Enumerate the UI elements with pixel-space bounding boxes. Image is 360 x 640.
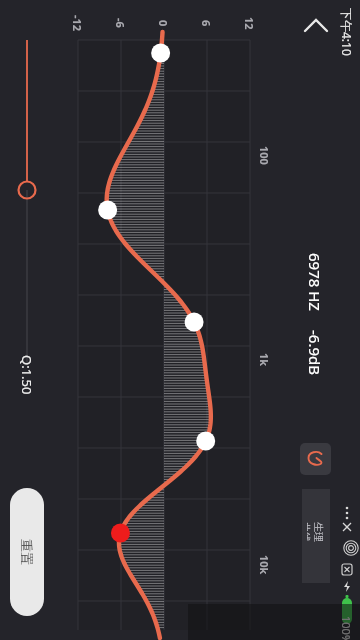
button[interactable]: Hearing profile	[300, 443, 331, 475]
staticText: 12	[242, 17, 257, 30]
button[interactable]: 生理曲线测试	[302, 489, 330, 583]
staticText: 1k	[257, 353, 272, 367]
staticText: Q:1.50	[18, 355, 36, 395]
staticText: 生理曲线测试	[307, 522, 325, 550]
staticText: 下午4:10	[339, 8, 355, 56]
button[interactable]: Collapse	[298, 8, 334, 42]
staticText: 10k	[257, 555, 272, 575]
staticText: 重置	[19, 539, 35, 565]
staticText: -6	[113, 18, 128, 28]
staticText: 100	[257, 146, 272, 165]
button[interactable]: 重置	[10, 488, 44, 616]
staticText: -6.9dB	[305, 330, 325, 375]
staticText: 0	[156, 20, 171, 27]
staticText: 6	[199, 20, 214, 27]
staticText: 6978 HZ	[305, 253, 325, 311]
staticText: 100%	[339, 616, 354, 640]
staticText: -12	[70, 15, 85, 32]
